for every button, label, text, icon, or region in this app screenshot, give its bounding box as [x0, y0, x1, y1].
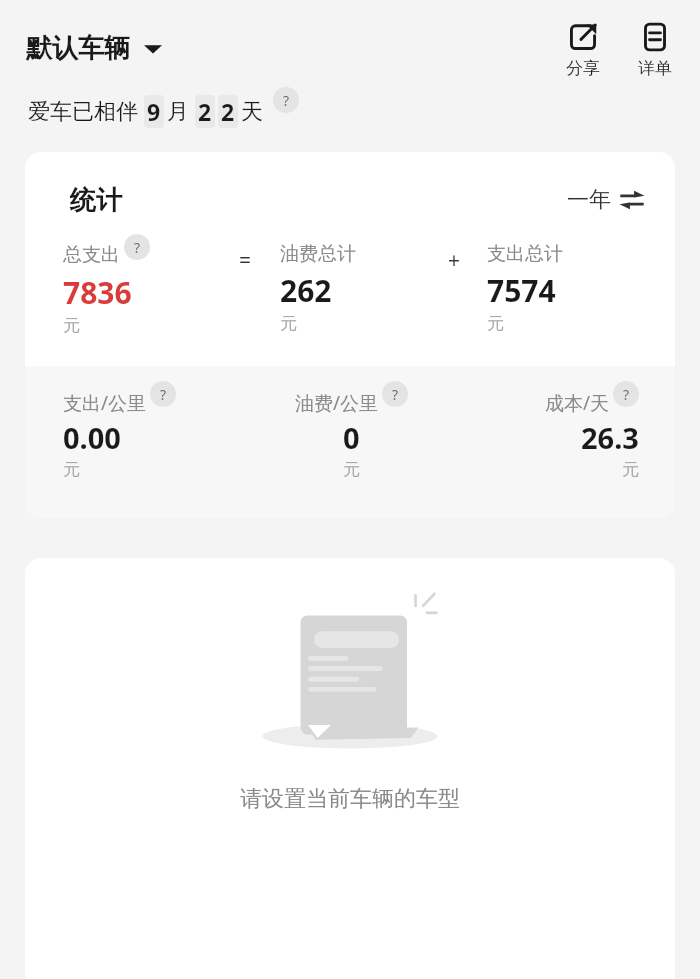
staticText: 请设置当前车辆的车型 — [240, 785, 460, 813]
staticText: 默认车辆 — [26, 32, 130, 65]
staticText: ? — [283, 91, 290, 110]
staticText: 262 — [280, 270, 332, 311]
staticText: 月 — [167, 98, 189, 126]
button[interactable]: 一年 — [563, 182, 649, 218]
staticText: 元 — [63, 315, 80, 336]
staticText: 元 — [343, 459, 360, 480]
staticText: 7836 — [63, 272, 132, 313]
staticText: + — [448, 246, 461, 275]
button[interactable]: 爱车已相伴 — [28, 95, 299, 128]
staticText: 油费总计 — [280, 242, 356, 266]
staticText: 7574 — [487, 270, 556, 311]
staticText: 分享 — [566, 58, 600, 79]
staticText: 元 — [280, 313, 297, 334]
button[interactable]: 默认车辆 — [26, 18, 162, 65]
staticText: 2 — [198, 96, 212, 127]
staticText: ? — [160, 385, 167, 404]
staticText: ? — [392, 385, 399, 404]
staticText: 总支出 — [63, 243, 120, 267]
staticText: 9 — [147, 96, 161, 127]
staticText: 油费/公里 — [295, 390, 379, 416]
staticText: 26.3 — [581, 418, 639, 457]
button[interactable]: 请设置当前车辆的车型 — [25, 558, 675, 979]
staticText: 元 — [622, 459, 639, 480]
staticText: 天 — [241, 98, 263, 126]
staticText: = — [239, 246, 252, 275]
staticText: 详单 — [638, 58, 672, 79]
staticText: 元 — [63, 459, 80, 480]
staticText: 支出总计 — [487, 242, 563, 266]
staticText: 成本/天 — [545, 390, 610, 416]
staticText: 0 — [343, 418, 360, 457]
staticText: 2 — [221, 96, 235, 127]
staticText: 支出/公里 — [63, 390, 147, 416]
staticText: 元 — [487, 313, 504, 334]
staticText: 一年 — [567, 186, 611, 214]
staticText: ? — [134, 238, 141, 257]
staticText: 爱车已相伴 — [28, 98, 138, 126]
staticText: 0.00 — [63, 418, 121, 457]
button[interactable]: 详单 — [632, 18, 678, 81]
button[interactable]: 分享 — [560, 18, 606, 81]
staticText: 统计 — [70, 184, 122, 217]
staticText: ? — [623, 385, 630, 404]
